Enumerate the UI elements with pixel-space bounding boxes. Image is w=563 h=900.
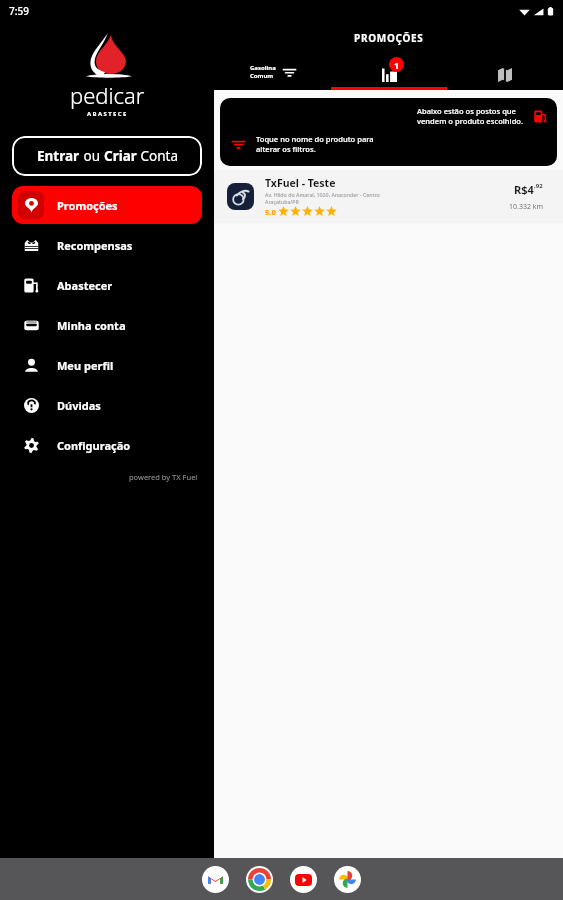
button[interactable]: Lista de postos	[331, 54, 447, 90]
button[interactable]: Configuração	[12, 426, 202, 464]
staticText: pedicar	[70, 80, 145, 110]
button[interactable]: TxFuel - Teste	[214, 170, 563, 223]
staticText: 7:59	[9, 4, 29, 18]
staticText: Toque no nome do produto para	[256, 134, 374, 144]
staticText: Gasolina	[250, 64, 276, 72]
staticText: ABASTECE	[87, 110, 128, 118]
button[interactable]: Entrar	[12, 136, 202, 176]
staticText: Abaixo estão os postos que	[417, 106, 516, 116]
staticText: 1	[394, 59, 400, 71]
staticText: TxFuel - Teste	[265, 176, 336, 190]
staticText: Entrar	[37, 147, 80, 165]
staticText: 10.332 km	[509, 202, 543, 212]
staticText: Minha conta	[57, 318, 126, 333]
staticText: Conta	[137, 147, 178, 165]
button[interactable]: Gasolina	[214, 54, 331, 90]
staticText: Promoções	[57, 198, 118, 213]
button[interactable]: Abastecer	[12, 266, 202, 304]
staticText: R$4	[514, 182, 534, 197]
staticText: Configuração	[57, 438, 131, 453]
button[interactable]: Dúvidas	[12, 386, 202, 424]
staticText: 5.0	[265, 207, 276, 217]
staticText: ,92	[534, 182, 543, 190]
button[interactable]: Meu perfil	[12, 346, 202, 384]
staticText: Araçatuba/PR	[265, 198, 299, 205]
staticText: PROMOÇÕES	[354, 31, 424, 45]
button[interactable]: Mapa	[447, 54, 563, 90]
staticText: Comum	[250, 72, 274, 80]
button[interactable]: Recompensas	[12, 226, 202, 264]
button[interactable]: Google Photos	[334, 866, 361, 893]
staticText: Meu perfil	[57, 358, 114, 373]
button[interactable]: Gmail	[202, 866, 229, 893]
staticText: Dúvidas	[57, 398, 101, 413]
staticText: Av. Hildo do Amaral, 1020, Anaconder - C…	[265, 191, 380, 198]
button[interactable]: YouTube	[290, 866, 317, 893]
staticText: powered by TX Fuel	[129, 472, 198, 482]
button[interactable]: Promoções	[12, 186, 202, 224]
staticText: Recompensas	[57, 238, 133, 253]
staticText: Abastecer	[57, 278, 113, 293]
staticText: ou	[80, 147, 104, 165]
staticText: vendem o produto escolhido.	[417, 116, 524, 126]
button[interactable]: Minha conta	[12, 306, 202, 344]
staticText: Criar	[104, 147, 137, 165]
button[interactable]: Chrome	[246, 866, 273, 893]
staticText: alterar os filtros.	[256, 144, 316, 154]
